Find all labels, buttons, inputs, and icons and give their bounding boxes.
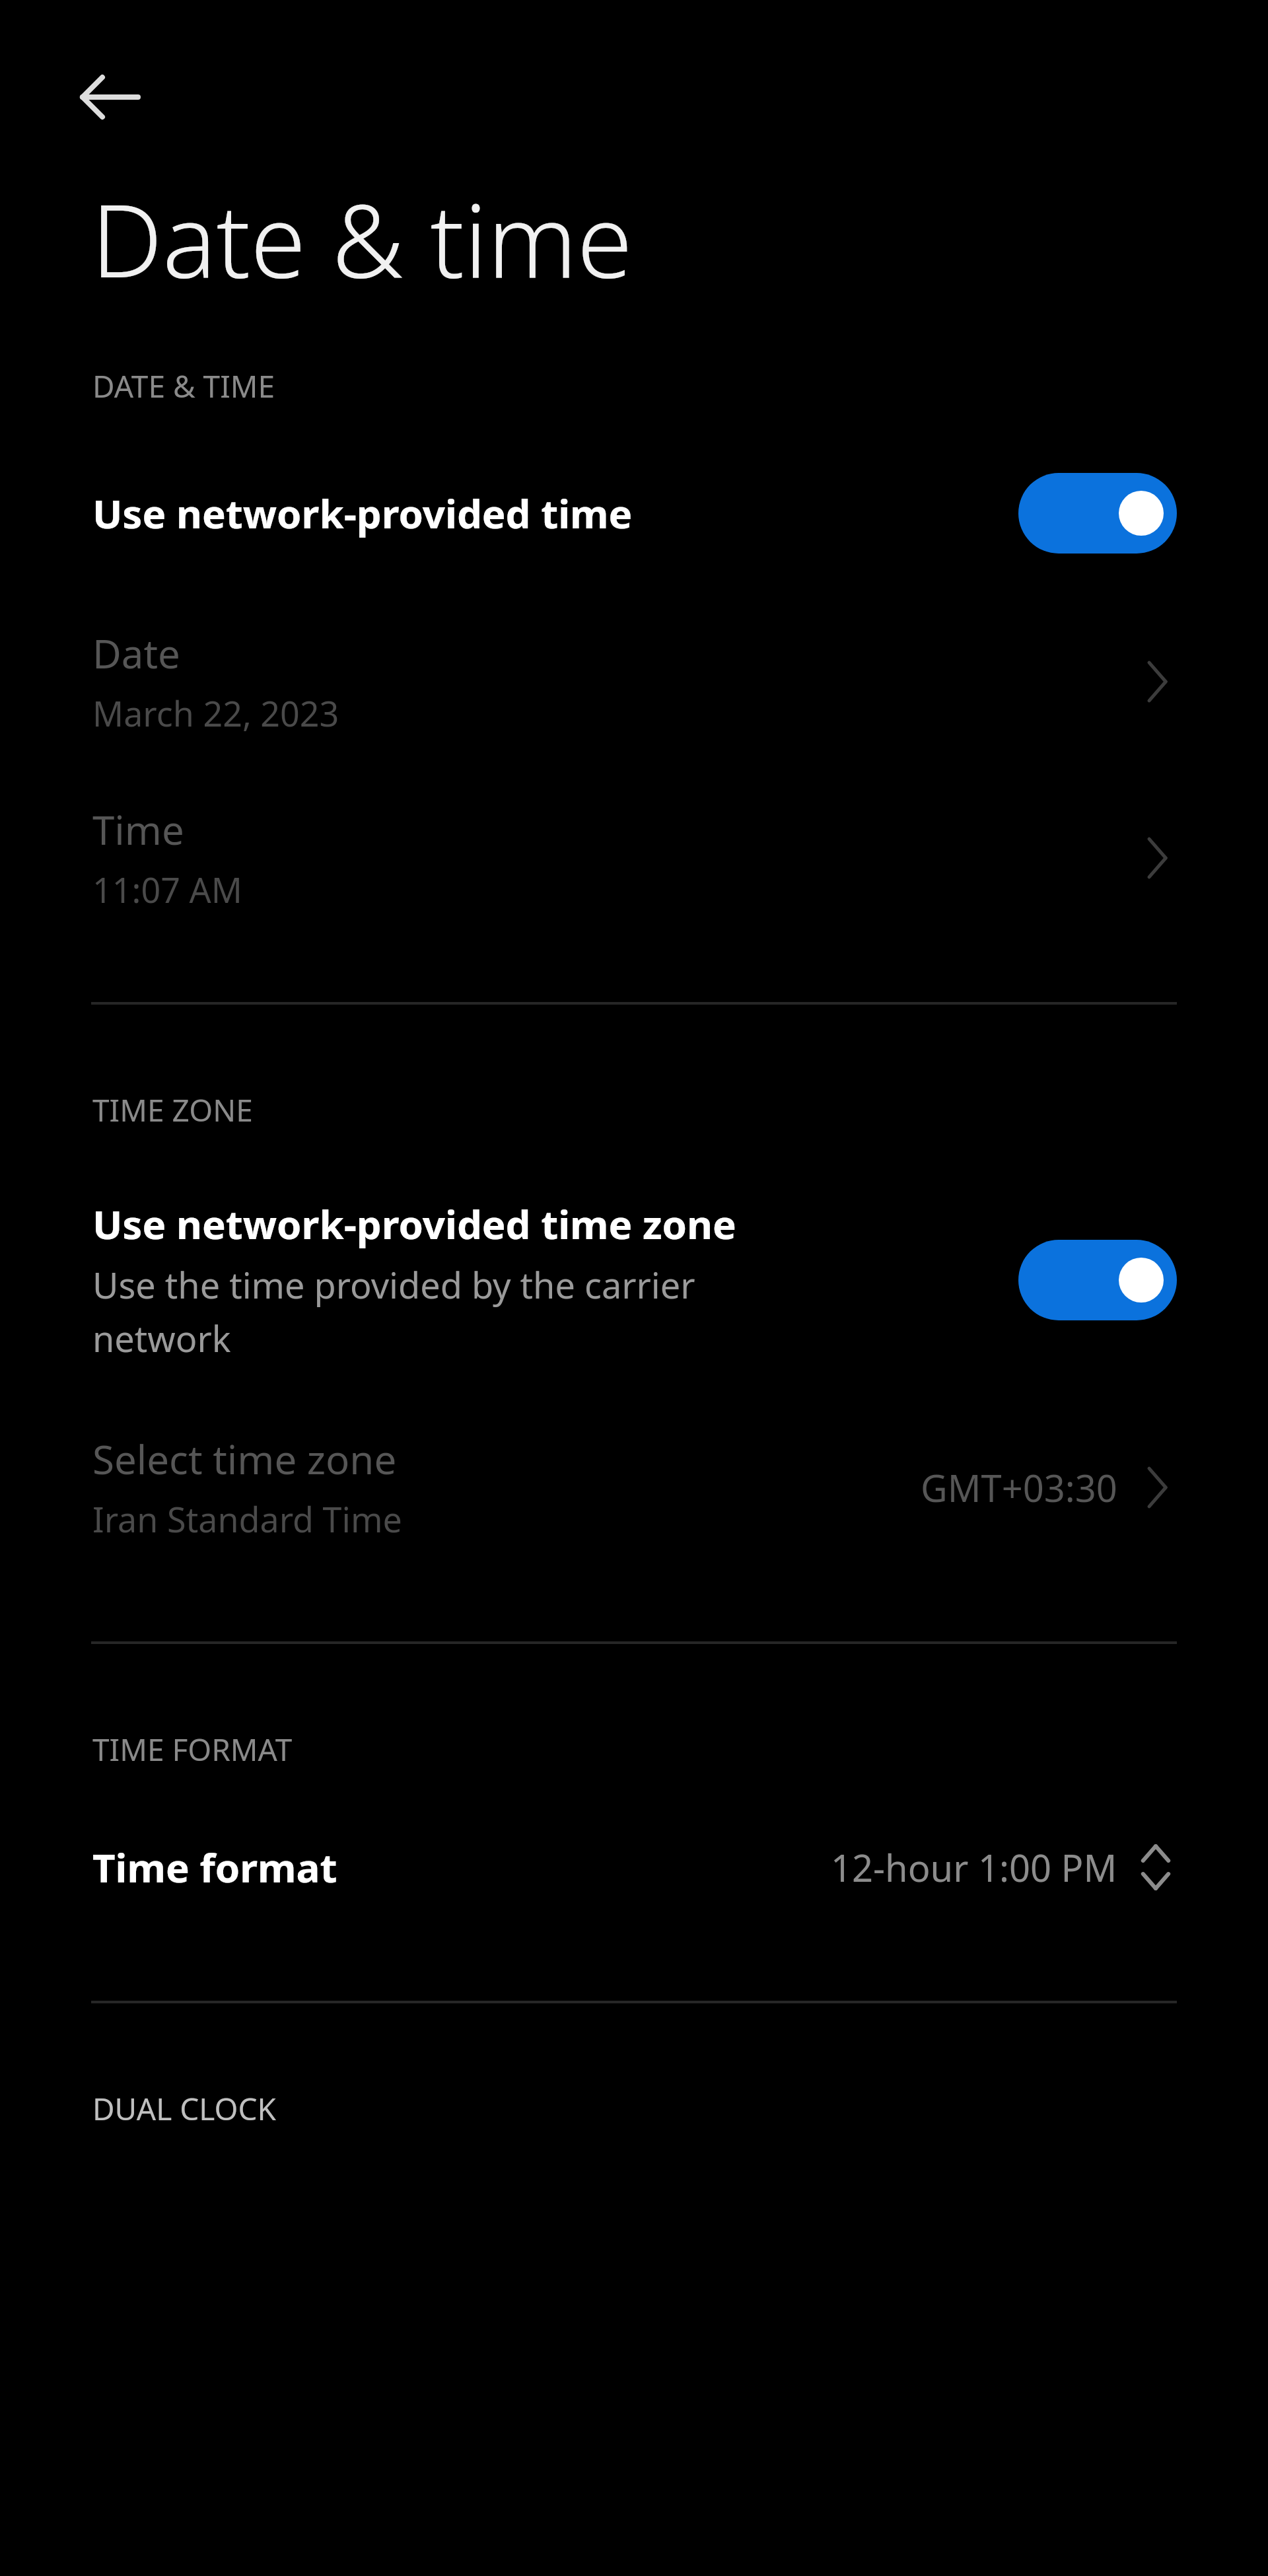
staticText: Select time zone [92,1432,397,1486]
staticText: 11:07 AM [92,866,242,913]
staticText: TIME ZONE [92,1089,253,1131]
button[interactable]: Back [71,58,149,136]
staticText: March 22, 2023 [92,690,339,736]
other: Change time format [1135,1840,1177,1895]
staticText: Use network-provided time [92,486,633,540]
staticText: Time [92,803,184,857]
staticText: Use the time provided by the carrier net… [92,1260,832,1363]
button[interactable]: Time [0,803,1268,913]
button[interactable]: Use network-provided time [0,473,1268,554]
staticText: DATE & TIME [92,365,275,407]
staticText: Iran Standard Time [92,1495,402,1542]
staticText: DUAL CLOCK [92,2088,276,2129]
button[interactable]: Time format [0,1840,1268,1895]
staticText: GMT+03:30 [921,1462,1117,1513]
staticText: Date & time [91,170,633,307]
staticText: TIME FORMAT [92,1729,293,1770]
staticText: 12-hour 1:00 PM [831,1842,1117,1892]
staticText: Date [92,626,180,680]
button[interactable]: Use network-provided time zone [0,1197,1268,1363]
staticText: Use network-provided time zone [92,1197,736,1251]
button[interactable]: Date [0,626,1268,736]
button[interactable]: Select time zone [0,1432,1268,1542]
button[interactable]: Toggle [1018,1240,1177,1320]
staticText: Time format [92,1840,831,1894]
button[interactable]: Toggle [1018,473,1177,554]
